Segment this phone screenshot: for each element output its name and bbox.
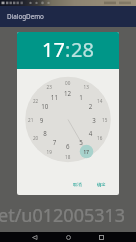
button[interactable]: 确定 xyxy=(93,179,110,190)
button[interactable]: 取消 xyxy=(69,179,86,190)
staticText: : xyxy=(65,36,71,63)
staticText: 确定 xyxy=(97,182,106,187)
button[interactable]: Recents xyxy=(95,232,107,242)
button[interactable]: 28 xyxy=(71,36,94,63)
staticText: DialogDemo xyxy=(7,12,44,21)
staticText: 取消 xyxy=(73,182,82,187)
staticText: et/u012005313 xyxy=(0,203,126,228)
button[interactable]: 17 xyxy=(42,36,65,63)
button[interactable]: Home xyxy=(62,232,74,242)
button[interactable]: Back xyxy=(28,232,40,242)
